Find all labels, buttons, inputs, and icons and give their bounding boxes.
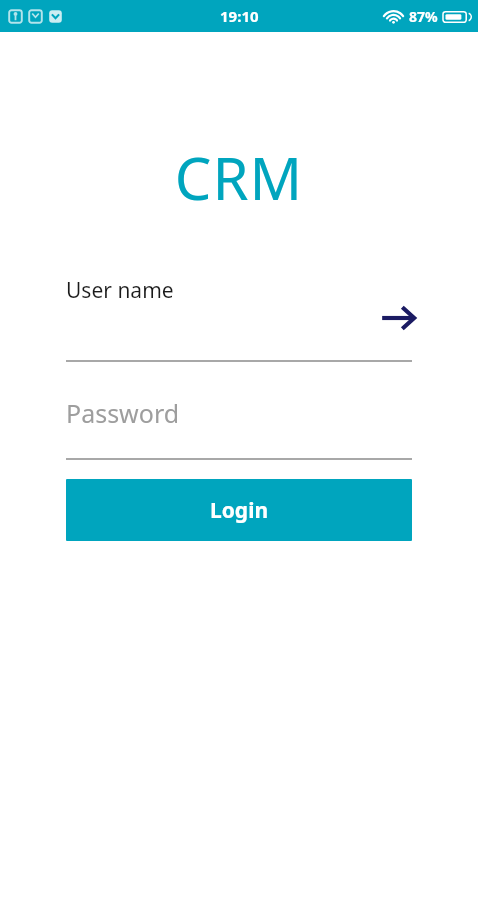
staticText: 19:10 (220, 6, 259, 26)
button[interactable]: Password (66, 370, 412, 459)
staticText: Login (210, 496, 269, 525)
staticText: CRM (0, 138, 478, 217)
button[interactable]: Login (66, 479, 412, 541)
staticText: Password (66, 396, 180, 430)
button[interactable]: Submit user name (372, 292, 424, 344)
button[interactable]: User name (66, 268, 412, 362)
staticText: 87% (409, 7, 438, 26)
staticText: User name (66, 276, 174, 305)
